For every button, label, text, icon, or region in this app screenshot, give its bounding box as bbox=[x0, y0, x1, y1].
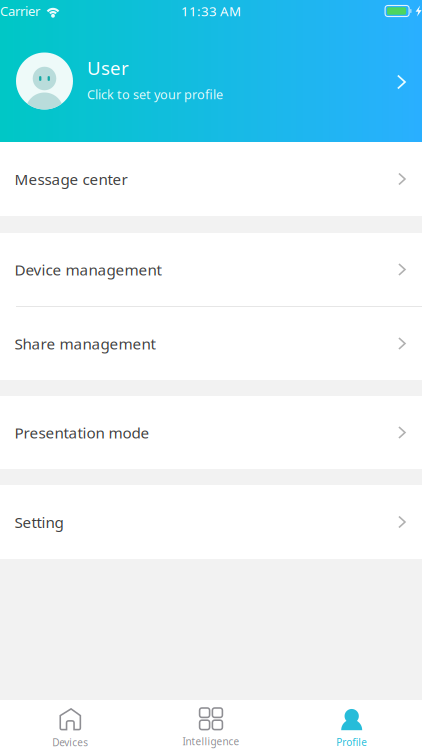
staticText: 11:33 AM bbox=[181, 2, 241, 20]
staticText: Message center bbox=[14, 169, 127, 189]
button[interactable]: Message center bbox=[0, 142, 422, 216]
button[interactable]: Devices bbox=[0, 700, 141, 750]
button[interactable]: Device management bbox=[0, 233, 422, 306]
button[interactable]: Intelligence bbox=[141, 700, 281, 750]
button[interactable]: Share management bbox=[0, 307, 422, 380]
staticText: Carrier bbox=[0, 2, 40, 20]
staticText: Setting bbox=[14, 512, 63, 532]
staticText: Share management bbox=[14, 333, 155, 354]
staticText: User bbox=[87, 55, 129, 81]
button[interactable]: Setting bbox=[0, 485, 422, 559]
button[interactable]: User bbox=[0, 22, 422, 142]
staticText: Presentation mode bbox=[14, 422, 149, 443]
button[interactable]: Profile bbox=[281, 700, 422, 750]
staticText: Devices bbox=[52, 735, 88, 749]
staticText: Intelligence bbox=[182, 735, 239, 748]
staticText: Click to set your profile bbox=[87, 86, 223, 103]
staticText: Profile bbox=[336, 735, 367, 749]
staticText: Device management bbox=[14, 259, 161, 280]
button[interactable]: Presentation mode bbox=[0, 396, 422, 469]
